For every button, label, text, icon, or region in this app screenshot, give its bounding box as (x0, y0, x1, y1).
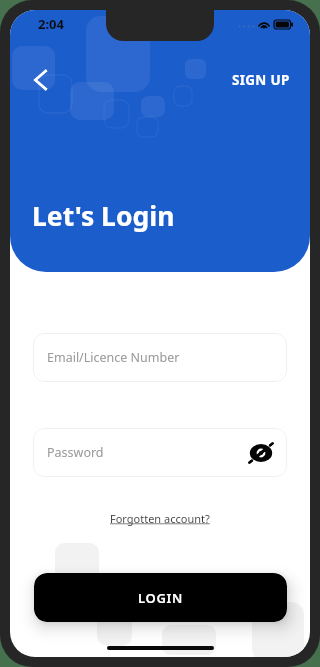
staticText: SIGN UP (232, 71, 290, 89)
staticText: 2:04 (38, 15, 64, 33)
button[interactable]: Show password (247, 439, 275, 467)
staticText: LOGIN (138, 589, 184, 607)
button[interactable]: Back (25, 65, 55, 95)
staticText: Email/Licence Number (47, 349, 180, 366)
button[interactable]: Password (33, 428, 287, 477)
staticText: Forgotten account? (110, 511, 210, 526)
button[interactable]: Forgotten account? (104, 507, 216, 530)
staticText: Let's Login (32, 198, 175, 234)
staticText: Password (47, 444, 104, 461)
button[interactable]: Email/Licence Number (33, 333, 287, 382)
button[interactable]: SIGN UP (212, 65, 310, 95)
button[interactable]: LOGIN (34, 573, 287, 622)
